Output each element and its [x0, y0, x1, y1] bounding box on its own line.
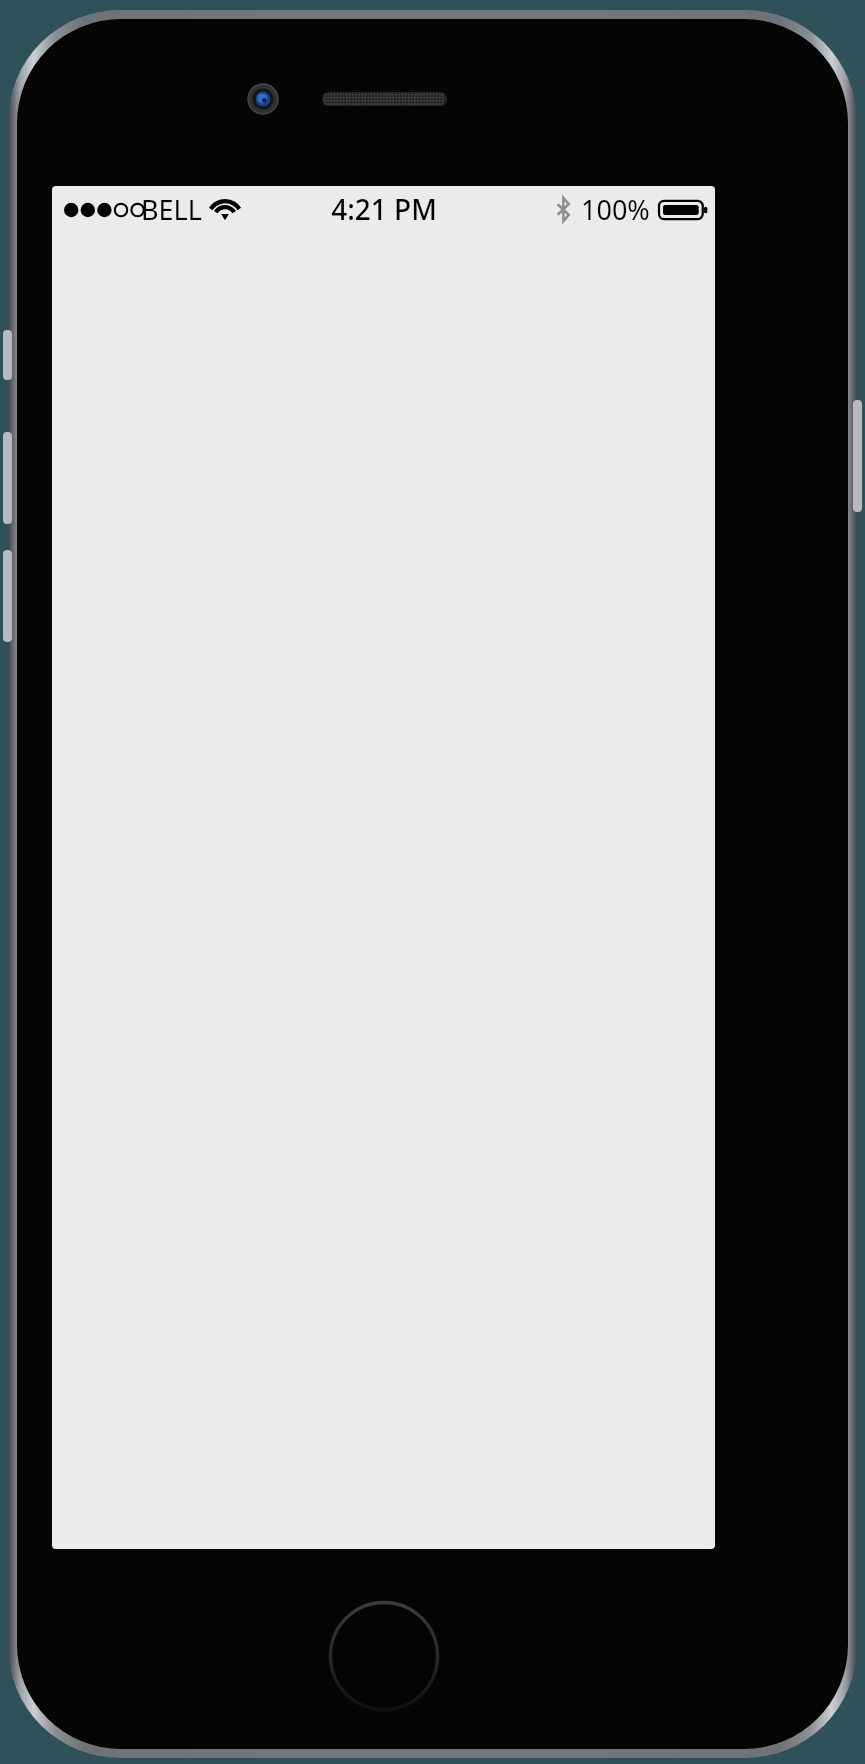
- button[interactable]: Cellular signal: [64, 191, 240, 228]
- other: Battery full: [659, 197, 709, 223]
- button[interactable]: Bluetooth: [556, 191, 709, 228]
- staticText: 100%: [581, 191, 650, 228]
- other: Bluetooth: [556, 196, 572, 223]
- button[interactable]: Home: [329, 1601, 439, 1711]
- staticText: 4:21 PM: [331, 190, 437, 228]
- other: Cellular signal: [64, 202, 134, 218]
- other: Wi-Fi: [210, 199, 240, 221]
- staticText: BELL: [141, 191, 202, 228]
